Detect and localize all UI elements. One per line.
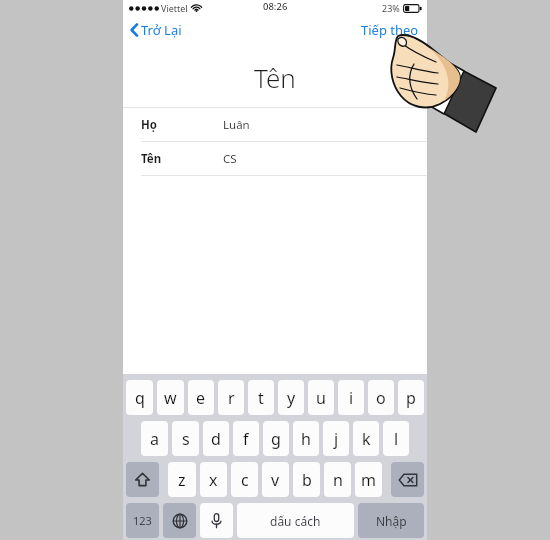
staticText: o xyxy=(376,387,386,409)
staticText: t xyxy=(258,387,264,409)
button[interactable]: Trở Lại xyxy=(123,16,192,44)
staticText: u xyxy=(316,387,326,409)
button[interactable]: o xyxy=(368,380,394,415)
button[interactable]: h xyxy=(293,421,319,456)
button[interactable]: Tên xyxy=(123,142,427,176)
staticText: h xyxy=(301,428,311,450)
staticText: p xyxy=(406,387,416,409)
button[interactable]: f xyxy=(233,421,259,456)
staticText: 23% xyxy=(382,2,400,14)
staticText: Trở Lại xyxy=(141,21,182,39)
button[interactable]: u xyxy=(308,380,334,415)
staticText: d xyxy=(211,428,221,450)
button[interactable]: i xyxy=(338,380,364,415)
button[interactable]: w xyxy=(157,380,184,415)
staticText: 08:26 xyxy=(263,0,288,13)
staticText: y xyxy=(287,387,296,409)
staticText: c xyxy=(241,469,249,491)
button[interactable]: y xyxy=(278,380,304,415)
staticText: f xyxy=(243,428,249,450)
staticText: Tên xyxy=(141,151,162,167)
staticText: r xyxy=(228,387,235,409)
staticText: w xyxy=(164,387,177,409)
button[interactable]: 123 xyxy=(126,503,159,538)
staticText: v xyxy=(271,469,280,491)
staticText: CS xyxy=(223,151,237,167)
button[interactable]: x xyxy=(200,462,227,497)
button[interactable]: g xyxy=(263,421,289,456)
staticText: z xyxy=(178,469,186,491)
button[interactable]: v xyxy=(262,462,289,497)
button[interactable]: dấu cách xyxy=(237,503,354,538)
button[interactable]: t xyxy=(248,380,274,415)
button[interactable]: r xyxy=(218,380,244,415)
button[interactable]: m xyxy=(355,462,382,497)
button[interactable]: Voice input xyxy=(200,503,233,538)
button[interactable]: Nhập xyxy=(358,503,424,538)
button[interactable]: Tiếp theo xyxy=(351,16,427,44)
staticText: Tiếp theo xyxy=(361,21,419,39)
button[interactable]: a xyxy=(141,421,168,456)
staticText: g xyxy=(271,428,281,450)
staticText: Luân xyxy=(223,117,250,133)
button[interactable]: k xyxy=(353,421,379,456)
button[interactable]: Shift xyxy=(126,462,159,497)
staticText: Viettel xyxy=(161,2,188,14)
staticText: x xyxy=(209,469,218,491)
staticText: e xyxy=(196,387,206,409)
button[interactable]: Backspace xyxy=(391,462,424,497)
staticText: dấu cách xyxy=(270,513,321,529)
button[interactable]: j xyxy=(323,421,349,456)
staticText: k xyxy=(362,428,371,450)
staticText: n xyxy=(333,469,343,491)
button[interactable]: Switch keyboard xyxy=(163,503,196,538)
button[interactable]: s xyxy=(172,421,199,456)
button[interactable]: l xyxy=(383,421,409,456)
staticText: a xyxy=(150,428,159,450)
button[interactable]: n xyxy=(324,462,351,497)
staticText: q xyxy=(135,387,145,409)
staticText: j xyxy=(334,428,339,450)
button[interactable]: Họ xyxy=(123,108,427,142)
button[interactable]: z xyxy=(168,462,196,497)
staticText: 123 xyxy=(133,513,152,528)
staticText: b xyxy=(302,469,312,491)
button[interactable]: b xyxy=(293,462,320,497)
staticText: l xyxy=(394,428,399,450)
staticText: Họ xyxy=(141,117,157,133)
button[interactable]: c xyxy=(231,462,258,497)
staticText: Tên xyxy=(254,60,296,95)
button[interactable]: q xyxy=(126,380,153,415)
staticText: m xyxy=(361,469,376,491)
button[interactable]: d xyxy=(203,421,229,456)
button[interactable]: e xyxy=(188,380,214,415)
staticText: s xyxy=(182,428,190,450)
staticText: i xyxy=(349,387,354,409)
staticText: Nhập xyxy=(376,513,407,529)
button[interactable]: p xyxy=(398,380,424,415)
